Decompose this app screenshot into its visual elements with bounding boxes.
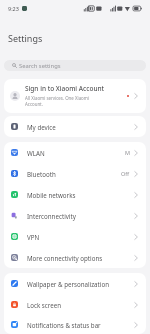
staticText: Mobile networks bbox=[27, 191, 134, 199]
staticText: All Xiaomi services. One Xiaomi Account. bbox=[25, 95, 95, 108]
staticText: 9:23 bbox=[8, 5, 19, 12]
staticText: Lock screen bbox=[27, 301, 134, 309]
button[interactable]: Sign in to Xiaomi Account bbox=[4, 79, 146, 113]
staticText: WLAN bbox=[27, 149, 125, 157]
staticText: More connectivity options bbox=[27, 254, 134, 262]
button[interactable]: More connectivity options bbox=[4, 247, 146, 268]
staticText: Bluetooth bbox=[27, 170, 121, 178]
button[interactable]: Search settings bbox=[4, 60, 146, 71]
staticText: My device bbox=[27, 123, 134, 131]
button[interactable]: Bluetooth bbox=[4, 163, 146, 184]
button[interactable]: Notifications & status bar bbox=[4, 315, 146, 334]
staticText: Settings bbox=[8, 32, 43, 44]
staticText: Sign in to Xiaomi Account bbox=[25, 84, 105, 93]
button[interactable]: VPN bbox=[4, 226, 146, 247]
button[interactable]: Lock screen bbox=[4, 294, 146, 315]
button[interactable]: WLAN bbox=[4, 142, 146, 163]
staticText: Wallpaper & personalization bbox=[27, 280, 134, 288]
staticText: Off bbox=[121, 170, 130, 177]
staticText: Notifications & status bar bbox=[27, 321, 134, 329]
button[interactable]: My device bbox=[4, 116, 146, 137]
button[interactable]: Wallpaper & personalization bbox=[4, 273, 146, 294]
staticText: M bbox=[125, 149, 130, 156]
button[interactable]: Interconnectivity bbox=[4, 205, 146, 226]
button[interactable]: Mobile networks bbox=[4, 184, 146, 205]
staticText: Search settings bbox=[19, 62, 61, 70]
staticText: Interconnectivity bbox=[27, 212, 134, 220]
staticText: VPN bbox=[27, 233, 134, 241]
